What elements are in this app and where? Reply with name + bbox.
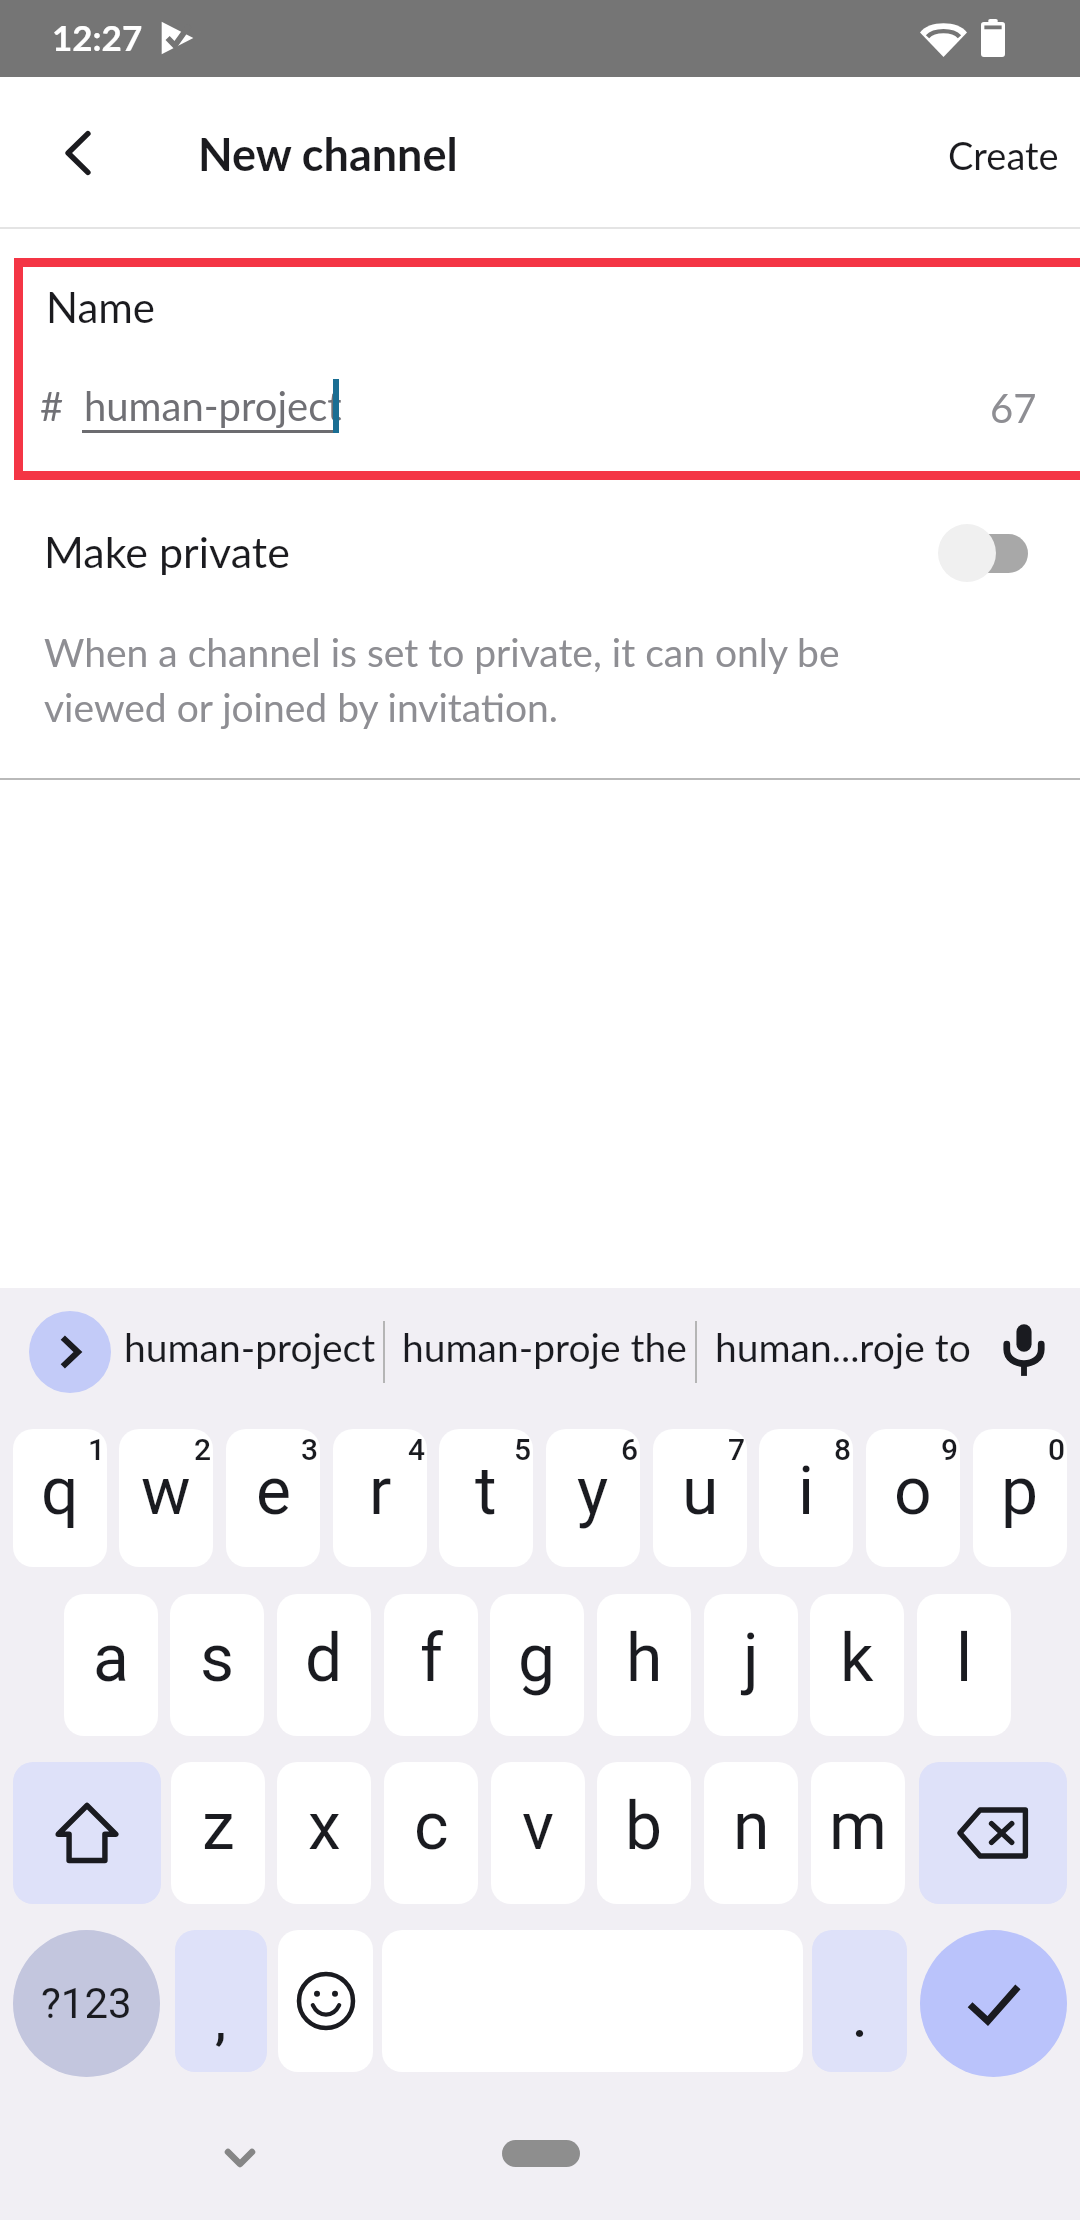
staticText: # — [40, 382, 64, 430]
staticText: , — [215, 1996, 227, 2050]
button[interactable]: Backspace — [919, 1762, 1067, 1904]
staticText: x — [308, 1788, 341, 1865]
button[interactable]: q — [13, 1429, 107, 1567]
button[interactable]: v — [491, 1762, 585, 1904]
staticText: e — [256, 1453, 291, 1530]
button[interactable]: h — [597, 1594, 691, 1736]
staticText: . — [853, 1994, 867, 2048]
staticText: 0 — [1048, 1432, 1066, 1467]
staticText: j — [743, 1620, 759, 1697]
button[interactable]: u — [653, 1429, 747, 1567]
button[interactable]: a — [64, 1594, 158, 1736]
staticText: n — [733, 1788, 770, 1865]
staticText: w — [141, 1453, 191, 1530]
button[interactable]: Voice input — [992, 1317, 1056, 1381]
button[interactable]: m — [811, 1762, 905, 1904]
button[interactable]: More suggestions — [29, 1311, 111, 1393]
staticText: o — [894, 1453, 932, 1530]
staticText: 6 — [621, 1432, 639, 1467]
staticText: s — [200, 1620, 235, 1697]
button[interactable]: j — [704, 1594, 798, 1736]
button[interactable]: human-project — [124, 1324, 376, 1371]
staticText: r — [369, 1453, 392, 1530]
staticText: p — [1001, 1453, 1039, 1530]
staticText: 8 — [834, 1432, 852, 1467]
button[interactable]: y — [546, 1429, 640, 1567]
button[interactable]: f — [384, 1594, 478, 1736]
button[interactable]: d — [277, 1594, 371, 1736]
staticText: a — [93, 1620, 129, 1697]
button[interactable]: c — [384, 1762, 478, 1904]
staticText: u — [682, 1453, 719, 1530]
staticText: 1 — [88, 1432, 106, 1467]
staticText: When a channel is set to private, it can… — [44, 629, 840, 731]
staticText: b — [625, 1788, 663, 1865]
button[interactable]: e — [226, 1429, 320, 1567]
button[interactable]: s — [170, 1594, 264, 1736]
staticText: 2 — [194, 1432, 212, 1467]
button[interactable]: human-proje the — [402, 1324, 687, 1371]
staticText: m — [829, 1788, 887, 1865]
button[interactable]: ?123 — [13, 1930, 160, 2077]
button[interactable]: human...roje to — [715, 1324, 971, 1371]
staticText: l — [956, 1620, 973, 1697]
button[interactable]: t — [439, 1429, 533, 1567]
staticText: Name — [46, 282, 156, 332]
button[interactable]: i — [759, 1429, 853, 1567]
button[interactable]: Create — [900, 77, 1080, 229]
button[interactable]: Shift — [13, 1762, 161, 1904]
staticText: 9 — [941, 1432, 959, 1467]
staticText: q — [41, 1453, 79, 1530]
staticText: t — [475, 1453, 497, 1530]
button[interactable]: b — [597, 1762, 691, 1904]
button[interactable]: Emoji — [278, 1930, 373, 2072]
button[interactable]: l — [917, 1594, 1011, 1736]
staticText: g — [518, 1620, 556, 1697]
button[interactable]: k — [810, 1594, 904, 1736]
staticText: v — [522, 1788, 554, 1865]
staticText: Make private — [44, 526, 290, 578]
button[interactable]: Enter — [920, 1930, 1067, 2077]
button[interactable]: g — [490, 1594, 584, 1736]
staticText: 12:27 — [52, 16, 143, 58]
staticText: 3 — [301, 1432, 319, 1467]
staticText: h — [626, 1620, 663, 1697]
staticText: z — [202, 1788, 235, 1865]
staticText: c — [414, 1788, 449, 1865]
button[interactable] — [0, 480, 1080, 600]
staticText: ?123 — [41, 1979, 132, 2028]
button[interactable]: z — [171, 1762, 265, 1904]
button[interactable]: o — [866, 1429, 960, 1567]
staticText: f — [420, 1620, 443, 1697]
staticText: New channel — [198, 127, 458, 181]
staticText: 4 — [408, 1432, 426, 1467]
button[interactable]: Hide keyboard — [205, 2111, 275, 2181]
staticText: 67 — [990, 384, 1037, 432]
button[interactable]: r — [333, 1429, 427, 1567]
staticText: k — [840, 1620, 874, 1697]
staticText: human-project — [84, 382, 342, 430]
button[interactable]: p — [973, 1429, 1067, 1567]
staticText: Create — [948, 132, 1059, 178]
staticText: 7 — [728, 1432, 746, 1467]
staticText: i — [798, 1453, 815, 1530]
staticText: 5 — [514, 1432, 532, 1467]
button[interactable]: n — [704, 1762, 798, 1904]
staticText: y — [577, 1453, 609, 1530]
button[interactable]: . — [812, 1930, 907, 2072]
button[interactable]: x — [277, 1762, 371, 1904]
button[interactable]: , — [175, 1930, 267, 2072]
button[interactable]: Back — [0, 77, 150, 229]
button[interactable]: w — [119, 1429, 213, 1567]
staticText: d — [305, 1620, 343, 1697]
